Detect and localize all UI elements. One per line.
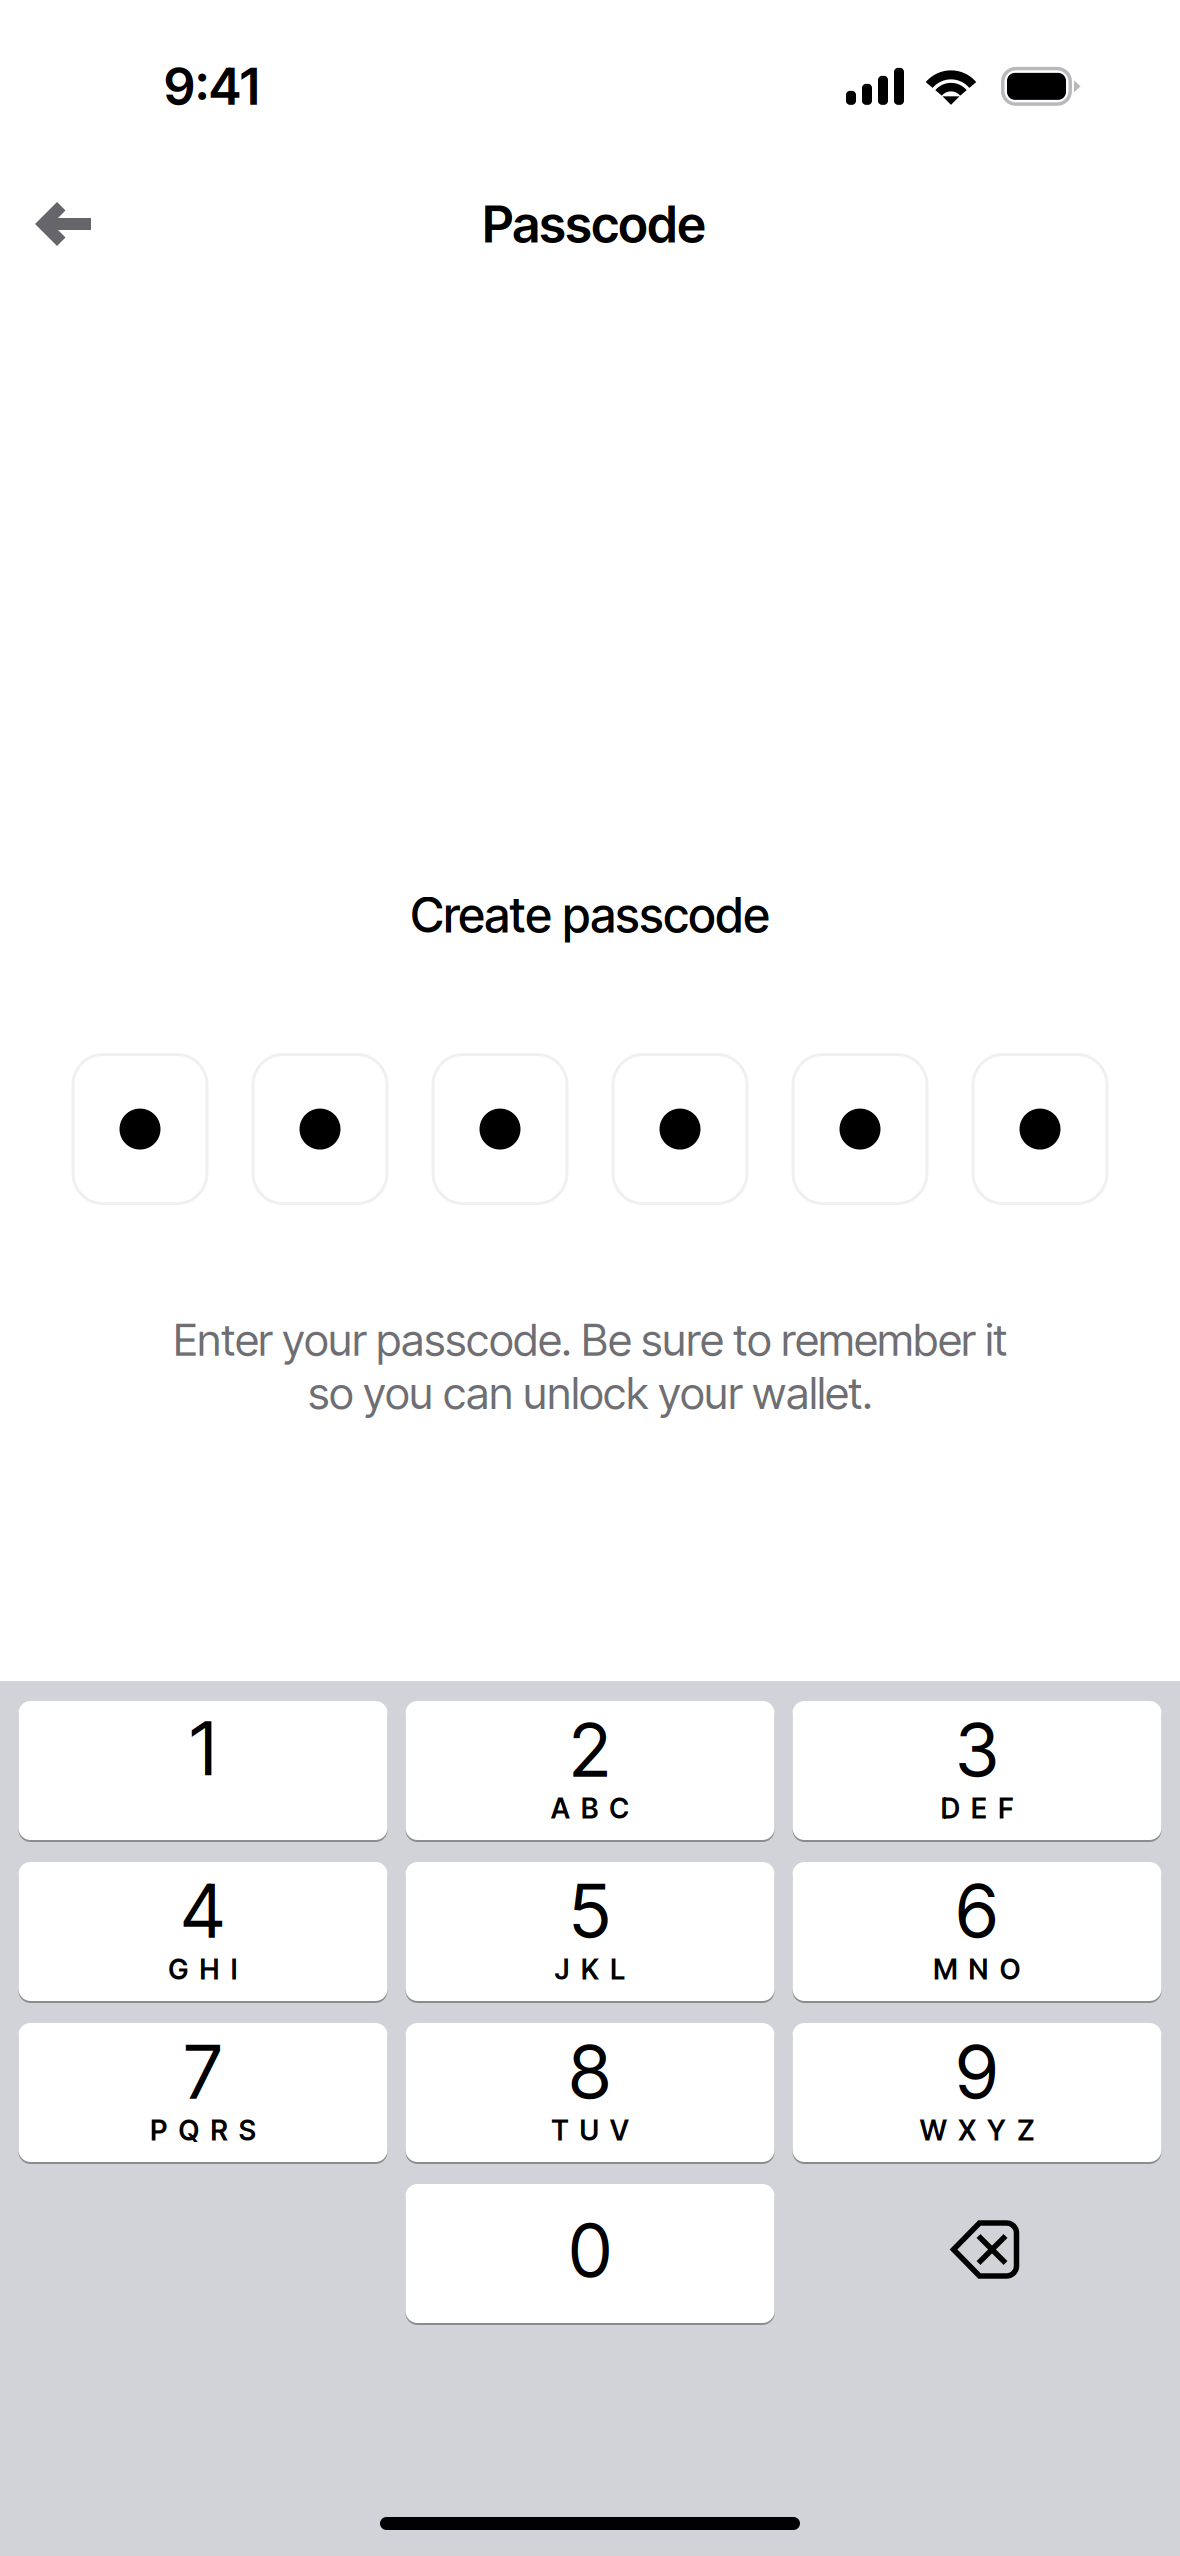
staticText: P Q R S	[150, 2113, 256, 2147]
button[interactable]: Back	[8, 169, 118, 279]
button[interactable]: 4	[18, 1862, 387, 2001]
staticText: Create passcode	[410, 886, 769, 944]
staticText: Enter your passcode. Be sure to remember…	[173, 1313, 1007, 1420]
button[interactable]: 0	[405, 2184, 774, 2323]
staticText: 1	[190, 1704, 216, 1793]
button[interactable]: 7	[18, 2023, 387, 2162]
button[interactable]: 1	[18, 1701, 387, 1840]
staticText: G H I	[168, 1952, 238, 1986]
staticText: 9	[956, 2028, 998, 2116]
staticText: Passcode	[482, 193, 705, 255]
button[interactable]: 5	[405, 1862, 774, 2001]
button[interactable]: 6	[792, 1862, 1161, 2001]
staticText: M N O	[933, 1952, 1021, 1986]
staticText: 7	[184, 2028, 222, 2116]
button[interactable]: Delete	[792, 2184, 1161, 2323]
staticText: 2	[569, 1706, 610, 1794]
staticText: A B C	[551, 1791, 629, 1825]
staticText: J K L	[555, 1952, 625, 1986]
staticText: 8	[569, 2028, 611, 2116]
staticText: W X Y Z	[920, 2113, 1034, 2147]
staticText: 5	[569, 1867, 610, 1955]
staticText: 6	[956, 1867, 998, 1955]
staticText: 9:41	[164, 56, 259, 117]
button[interactable]: 8	[405, 2023, 774, 2162]
staticText: 4	[181, 1867, 225, 1955]
button[interactable]: 9	[792, 2023, 1161, 2162]
staticText: T U V	[551, 2113, 629, 2147]
staticText: 0	[569, 2206, 611, 2295]
staticText: D E F	[941, 1791, 1013, 1825]
staticText: 3	[955, 1706, 998, 1794]
button[interactable]: 3	[792, 1701, 1161, 1840]
button[interactable]: 2	[405, 1701, 774, 1840]
